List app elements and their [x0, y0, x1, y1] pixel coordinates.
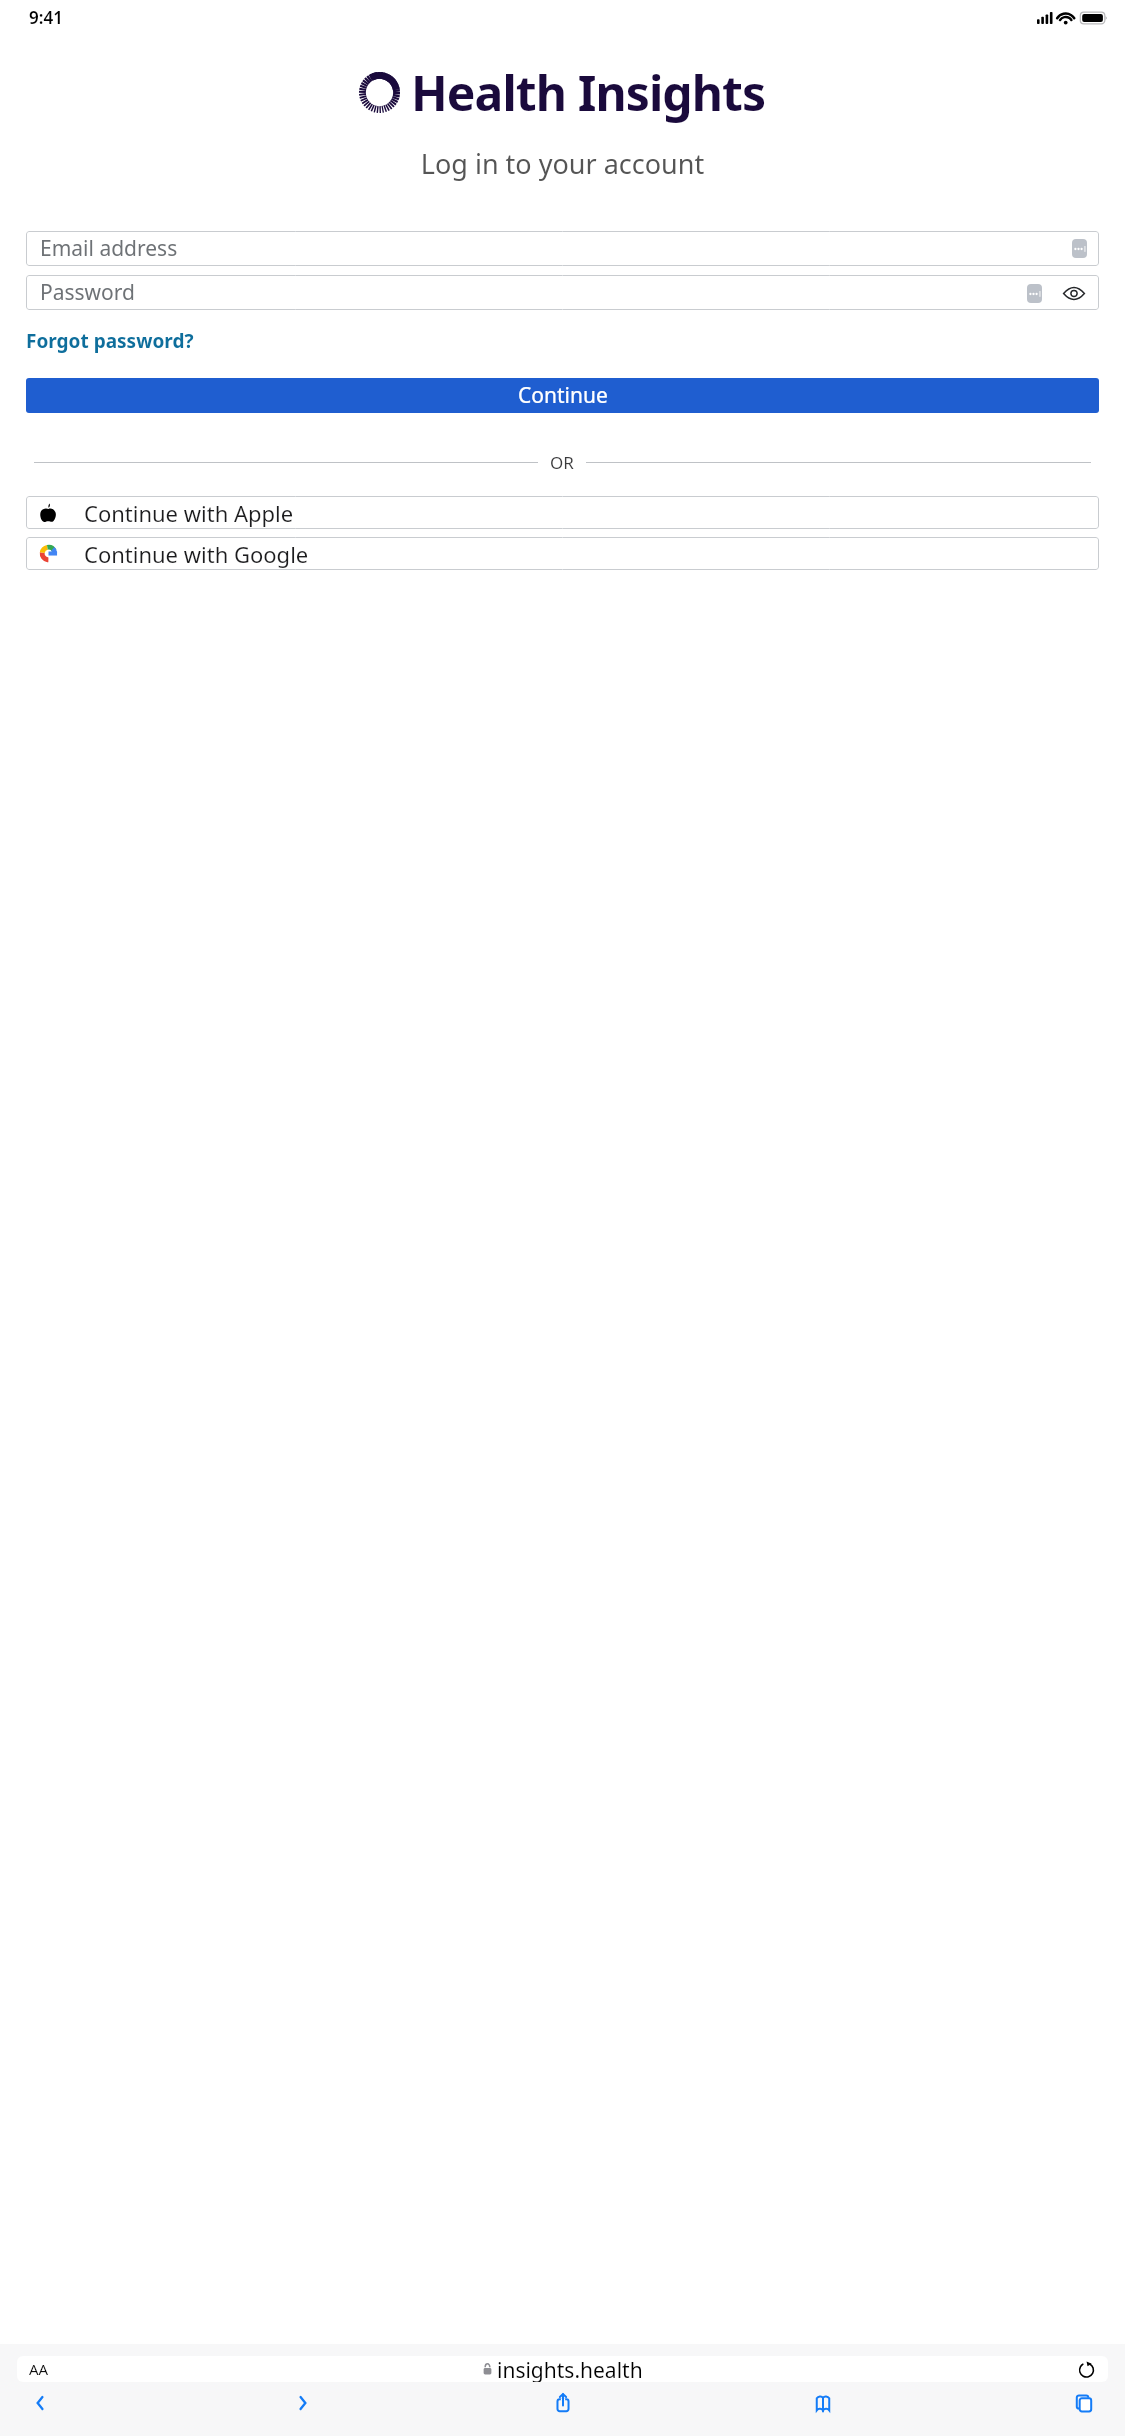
- staticText: Continue with Apple: [84, 498, 294, 528]
- button[interactable]: Autofill: [1072, 239, 1087, 258]
- button[interactable]: Show password: [1061, 280, 1087, 306]
- button[interactable]: Continue with Google: [26, 537, 1099, 570]
- staticText: OR: [550, 451, 574, 474]
- staticText: Forgot password?: [26, 328, 194, 354]
- button[interactable]: Continue with Apple: [26, 496, 1099, 529]
- button[interactable]: AA: [17, 2356, 1108, 2382]
- staticText: insights.health: [497, 2356, 643, 2382]
- staticText: Password: [40, 278, 135, 307]
- button[interactable]: Back: [14, 2393, 68, 2427]
- button[interactable]: Forgot password?: [26, 326, 194, 356]
- button[interactable]: Share: [536, 2393, 590, 2427]
- button[interactable]: Forward: [275, 2393, 329, 2427]
- button[interactable]: Reload: [1075, 2358, 1097, 2380]
- staticText: Email address: [40, 234, 178, 263]
- button[interactable]: Continue: [26, 378, 1099, 413]
- staticText: AA: [29, 2359, 49, 2379]
- button[interactable]: Autofill: [1027, 284, 1042, 303]
- button[interactable]: Bookmarks: [796, 2393, 850, 2427]
- staticText: 9:41: [29, 6, 63, 29]
- staticText: Continue: [518, 381, 608, 410]
- button[interactable]: Password: [26, 275, 1099, 310]
- staticText: Log in to your account: [0, 145, 1125, 182]
- button[interactable]: Email address: [26, 231, 1099, 266]
- staticText: Continue with Google: [84, 539, 309, 569]
- staticText: Health Insights: [411, 60, 766, 125]
- button[interactable]: Tabs: [1057, 2393, 1111, 2427]
